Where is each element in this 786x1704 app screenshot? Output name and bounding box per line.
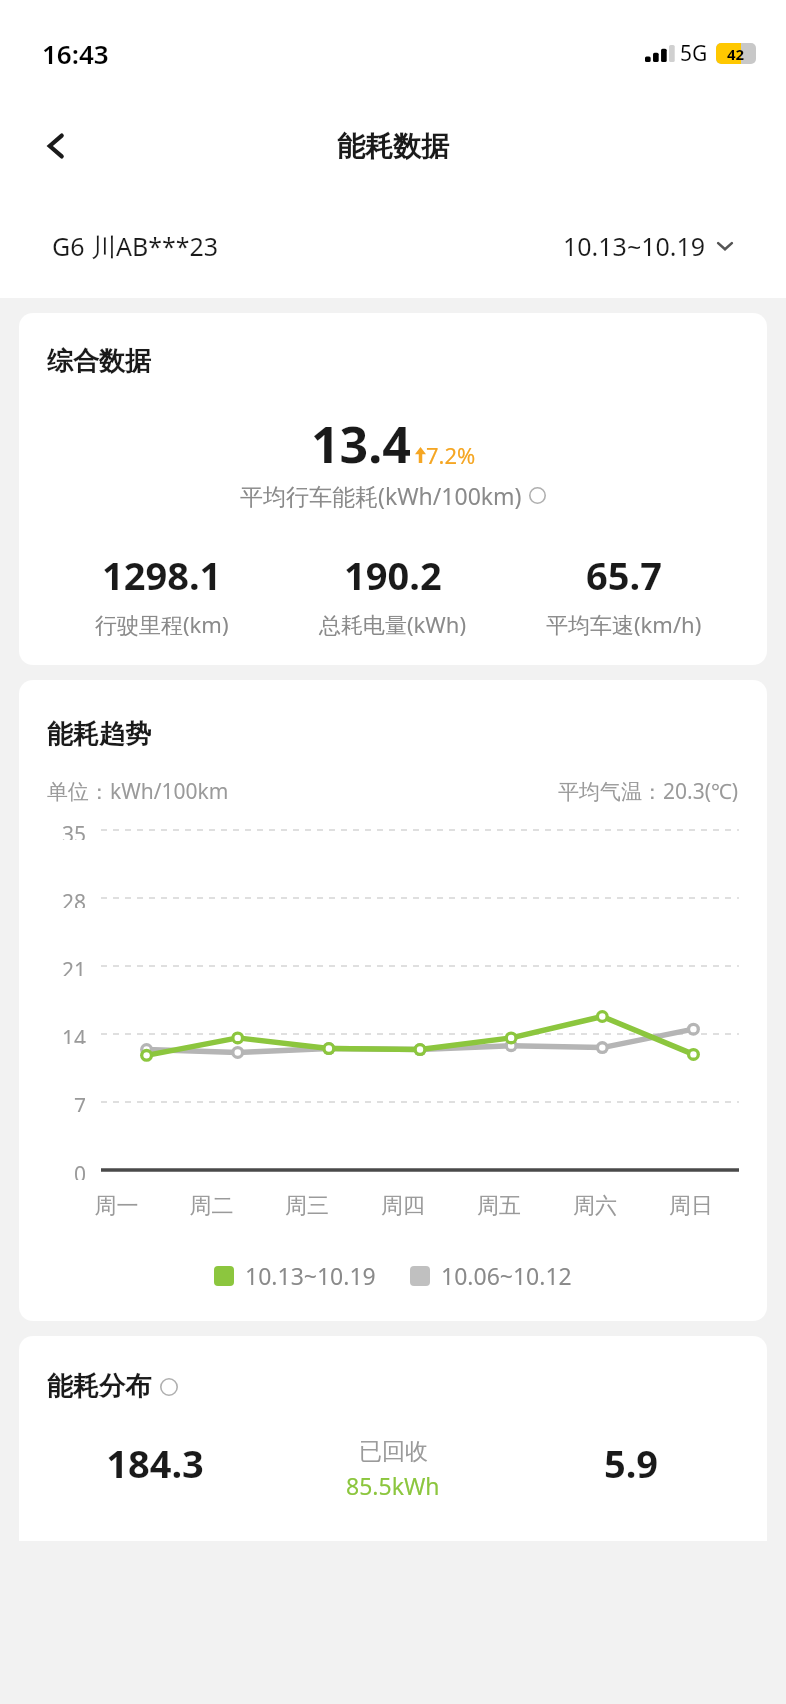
staticText: 85.5kWh [346, 1470, 440, 1501]
staticText: 平均车速(km/h) [546, 609, 702, 639]
staticText: 平均行车能耗(kWh/100km) [240, 480, 522, 511]
staticText: 周二 [164, 1192, 259, 1220]
staticText: 综合数据 [47, 345, 151, 378]
staticText: 7 [74, 1092, 87, 1112]
staticText: 周一 [69, 1192, 164, 1220]
staticText: 周日 [643, 1192, 739, 1220]
staticText: 平均气温：20.3(℃) [558, 777, 739, 806]
staticText: 16:43 [42, 36, 109, 71]
staticText: G6 川AB***23 [52, 229, 219, 263]
staticText: 35 [62, 820, 87, 840]
staticText: 能耗趋势 [47, 718, 151, 751]
staticText: 14 [62, 1024, 87, 1044]
staticText: 行驶里程(km) [95, 609, 229, 639]
staticText: 已回收 [359, 1437, 428, 1466]
staticText: 周六 [547, 1192, 643, 1220]
staticText: 10.13~10.19 [563, 229, 706, 263]
staticText: 1298.1 [102, 549, 222, 601]
staticText: 周三 [259, 1192, 355, 1220]
staticText: 13.4 [311, 410, 411, 478]
staticText: 28 [62, 888, 87, 908]
staticText: 0 [74, 1160, 87, 1180]
button[interactable]: 10.13~10.19 [563, 229, 734, 263]
staticText: 190.2 [344, 549, 442, 601]
staticText: 10.13~10.19 [245, 1260, 376, 1291]
staticText: 总耗电量(kWh) [319, 609, 467, 639]
staticText: 5.9 [523, 1437, 739, 1489]
staticText: 10.06~10.12 [441, 1260, 572, 1291]
staticText: 21 [62, 956, 87, 976]
staticText: 单位：kWh/100km [47, 777, 229, 806]
staticText: 7.2% [426, 440, 476, 470]
staticText: 能耗数据 [337, 129, 449, 164]
button[interactable]: Back [30, 120, 82, 172]
staticText: 5G [680, 39, 708, 68]
staticText: 周四 [355, 1192, 451, 1220]
staticText: 184.3 [47, 1437, 263, 1489]
staticText: 42 [727, 44, 745, 64]
staticText: 65.7 [586, 549, 662, 601]
staticText: 周五 [451, 1192, 547, 1220]
staticText: 能耗分布 [47, 1370, 151, 1403]
